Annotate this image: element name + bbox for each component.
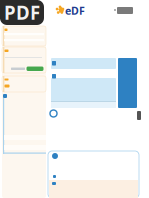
staticText: PDF (4, 0, 40, 25)
staticText: eDF (65, 3, 85, 18)
